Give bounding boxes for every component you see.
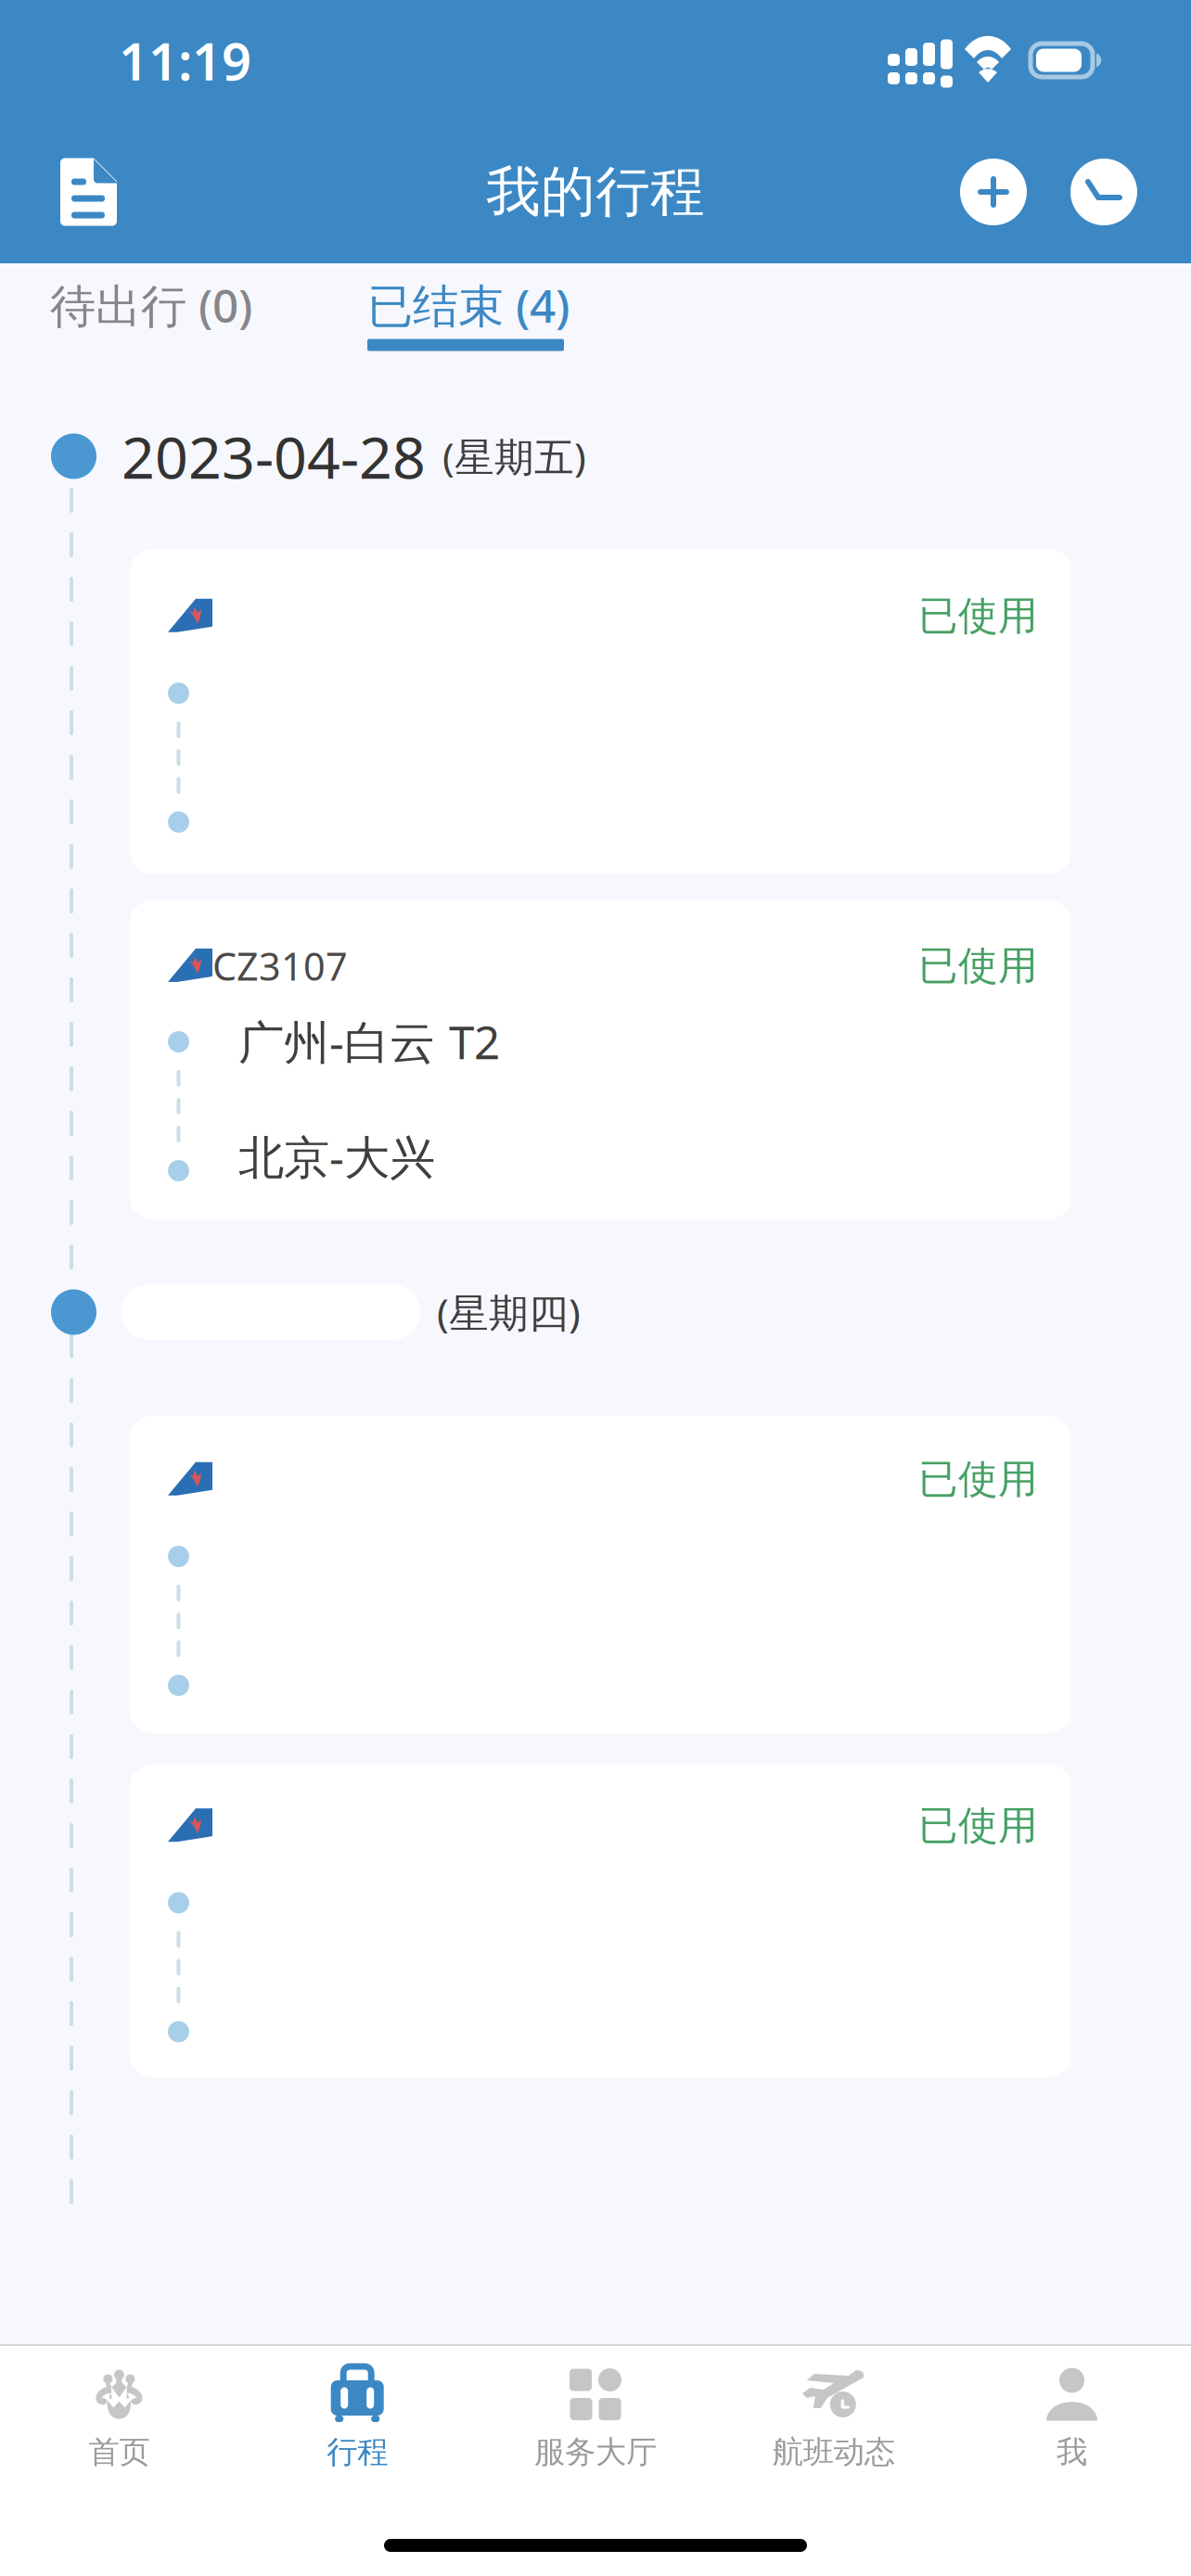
staticText: 待出行 (0): [50, 274, 252, 335]
button[interactable]: 已使用: [130, 549, 1071, 874]
staticText: (星期五): [442, 430, 586, 483]
button[interactable]: 我: [953, 2346, 1191, 2482]
button[interactable]: 行程: [238, 2346, 476, 2482]
staticText: 已使用: [918, 592, 1038, 640]
staticText: (星期四): [437, 1286, 581, 1338]
staticText: 已使用: [918, 1801, 1038, 1850]
button[interactable]: 首页: [0, 2346, 238, 2482]
staticText: 我的行程: [486, 159, 705, 225]
staticText: 首页: [88, 2433, 150, 2471]
button[interactable]: 航班动态: [715, 2346, 953, 2482]
button[interactable]: Recent trips: [1070, 142, 1137, 242]
staticText: 北京-大兴: [238, 1126, 435, 1187]
staticText: 我: [1057, 2433, 1087, 2471]
button[interactable]: 待出行 (0): [50, 263, 252, 363]
button[interactable]: 已使用: [130, 1765, 1071, 2077]
button[interactable]: 服务大厅: [476, 2346, 715, 2482]
button[interactable]: Add trip: [960, 142, 1027, 242]
staticText: CZ3107: [212, 940, 348, 991]
staticText: 已使用: [918, 1455, 1038, 1504]
staticText: 服务大厅: [534, 2433, 657, 2471]
button[interactable]: CZ3107: [130, 900, 1071, 1219]
button[interactable]: 已结束 (4): [367, 263, 570, 363]
staticText: 已使用: [918, 941, 1038, 990]
staticText: 行程: [327, 2433, 388, 2471]
staticText: 航班动态: [772, 2433, 895, 2471]
button[interactable]: 已使用: [130, 1416, 1071, 1733]
staticText: 广州-白云 T2: [238, 1011, 500, 1072]
staticText: 已结束 (4): [367, 274, 570, 335]
staticText: 11:19: [119, 26, 251, 95]
staticText: 2023-04-28: [122, 418, 426, 495]
button[interactable]: Documents: [38, 140, 140, 244]
